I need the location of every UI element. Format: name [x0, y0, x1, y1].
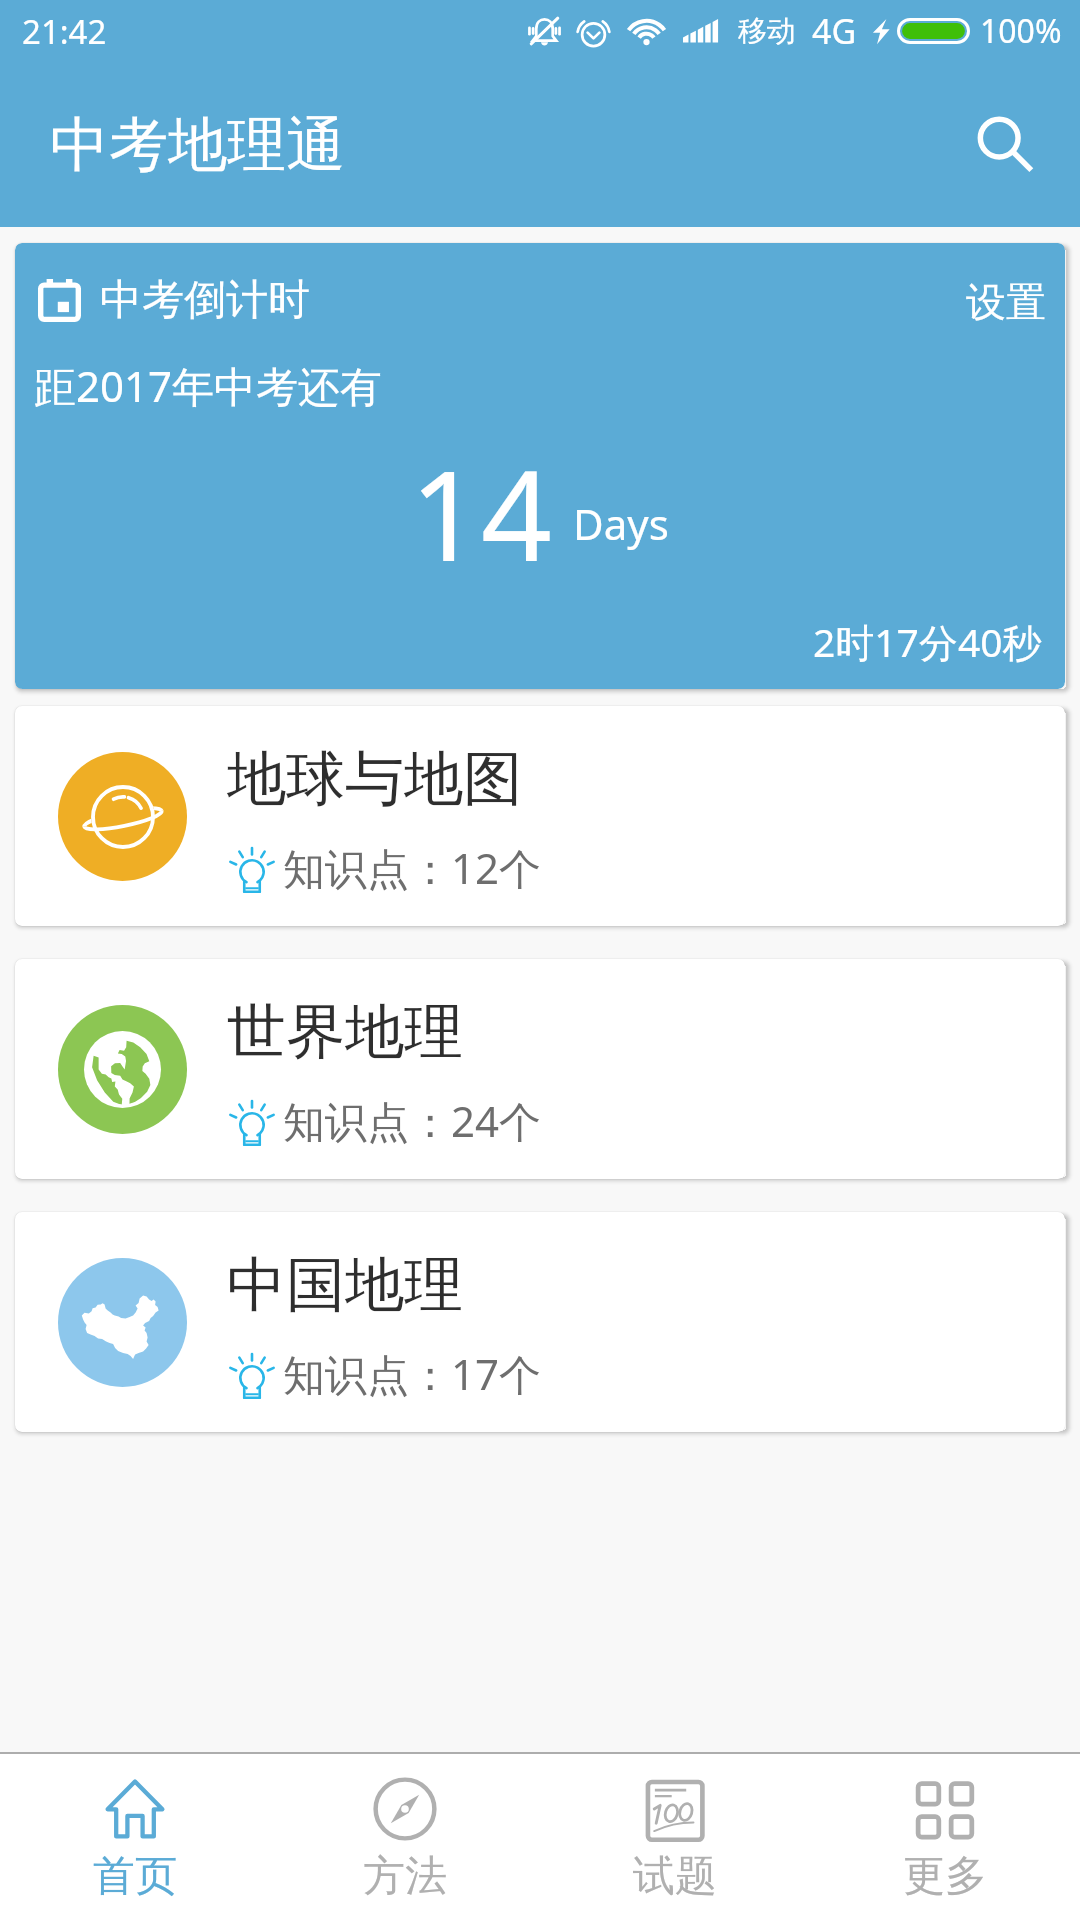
button[interactable]: 更多 — [810, 1754, 1080, 1920]
button[interactable]: 世界地理 — [15, 959, 1065, 1179]
staticText: 知识点：12个 — [283, 839, 542, 896]
staticText: 中国地理 — [227, 1248, 463, 1322]
staticText: 知识点：24个 — [283, 1092, 542, 1149]
staticText: 世界地理 — [227, 995, 463, 1069]
staticText: 距2017年中考还有 — [34, 357, 383, 414]
staticText: 2时17分40秒 — [813, 615, 1042, 668]
staticText: 100% — [980, 9, 1062, 53]
button[interactable]: 试题 — [540, 1754, 810, 1920]
staticText: 方法 — [363, 1850, 447, 1903]
button[interactable]: 设置 — [948, 268, 1065, 336]
staticText: 试题 — [633, 1850, 717, 1903]
staticText: 地球与地图 — [227, 742, 522, 816]
staticText: 14 — [410, 428, 552, 597]
button[interactable]: 首页 — [0, 1754, 270, 1920]
button[interactable]: 中考倒计时 — [15, 243, 1065, 689]
staticText: 21:42 — [22, 9, 107, 54]
staticText: 首页 — [93, 1850, 177, 1903]
staticText: 移动 — [738, 13, 796, 50]
button[interactable]: 方法 — [270, 1754, 540, 1920]
staticText: 中考地理通 — [50, 108, 345, 182]
staticText: 中考倒计时 — [100, 274, 310, 327]
staticText: 知识点：17个 — [283, 1345, 542, 1402]
button[interactable]: Search — [955, 95, 1055, 195]
staticText: Days — [573, 495, 669, 552]
staticText: 更多 — [903, 1850, 987, 1903]
button[interactable]: 中国地理 — [15, 1212, 1065, 1432]
staticText: 4G — [812, 8, 857, 54]
button[interactable]: 地球与地图 — [15, 706, 1065, 926]
